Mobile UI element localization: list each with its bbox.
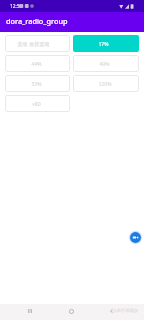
- button[interactable]: Recent apps: [20, 305, 40, 317]
- staticText: 44%: [31, 60, 42, 67]
- staticText: 120%: [98, 80, 112, 87]
- staticText: 小米手机截屏: [112, 308, 139, 314]
- button[interactable]: 17%: [73, 35, 139, 52]
- staticText: 12:54: [10, 3, 23, 10]
- button[interactable]: v80: [5, 95, 70, 112]
- button[interactable]: Back: [101, 305, 121, 317]
- staticText: v80: [32, 100, 41, 107]
- button[interactable]: 120%: [73, 75, 139, 92]
- button[interactable]: 53%: [5, 75, 70, 92]
- button[interactable]: 44%: [5, 55, 70, 72]
- staticText: 17%: [98, 40, 109, 47]
- button[interactable]: 选项 推荐选项: [5, 35, 70, 52]
- staticText: dora_radio_group: [6, 16, 68, 26]
- button[interactable]: 49%: [73, 55, 139, 72]
- staticText: 53%: [31, 80, 42, 87]
- staticText: 选项 推荐选项: [17, 40, 50, 47]
- button[interactable]: Record video: [128, 230, 143, 245]
- staticText: 49%: [99, 60, 110, 67]
- button[interactable]: Home: [61, 305, 81, 317]
